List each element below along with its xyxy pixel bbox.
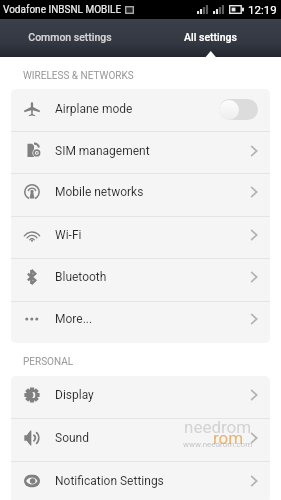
- button[interactable]: Sound: [11, 419, 270, 461]
- button[interactable]: Display: [11, 376, 270, 418]
- staticText: needrom: [184, 417, 252, 437]
- staticText: WIRELESS & NETWORKS: [23, 70, 134, 82]
- staticText: rom: [213, 428, 244, 448]
- staticText: Airplane mode: [55, 102, 222, 116]
- staticText: www.needrom.com: [183, 440, 253, 449]
- button[interactable]: Notification Settings: [11, 462, 270, 500]
- staticText: All settings: [184, 31, 237, 43]
- staticText: More...: [55, 312, 253, 326]
- staticText: Sound: [55, 431, 253, 445]
- staticText: Bluetooth: [55, 270, 253, 284]
- button[interactable]: All settings: [140, 19, 281, 57]
- button[interactable]: Common settings: [0, 19, 140, 57]
- button[interactable]: More...: [11, 302, 270, 343]
- staticText: PERSONAL: [23, 356, 74, 368]
- button[interactable]: SIM management: [11, 132, 270, 173]
- staticText: Wi-Fi: [55, 228, 253, 242]
- staticText: Vodafone INBSNL MOBILE: [3, 4, 122, 16]
- staticText: Notification Settings: [55, 474, 253, 488]
- staticText: Common settings: [28, 31, 112, 43]
- staticText: SIM management: [55, 144, 253, 158]
- staticText: Display: [55, 388, 253, 402]
- staticText: 12:19: [248, 3, 277, 16]
- staticText: Mobile networks: [55, 185, 253, 199]
- button[interactable]: Wi-Fi: [11, 217, 270, 258]
- button[interactable]: Mobile networks: [11, 174, 270, 216]
- button[interactable]: Airplane mode: [11, 89, 270, 131]
- button[interactable]: Bluetooth: [11, 259, 270, 301]
